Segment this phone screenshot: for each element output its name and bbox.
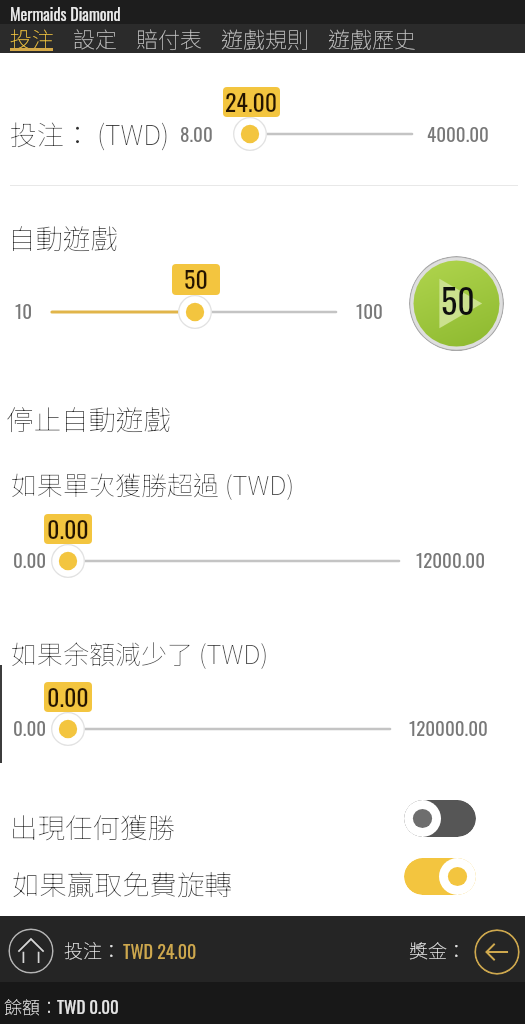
staticText: 餘額： [4,993,58,1019]
staticText: 賠付表 [136,22,203,51]
button[interactable]: 遊戲規則 [221,24,310,53]
staticText: 4000.00 [427,119,489,147]
staticText: 50 [184,264,208,291]
staticText: 100 [356,296,383,324]
button[interactable]: 賠付表 [136,24,203,53]
staticText: 投注 [10,22,55,51]
staticText: 如果余額減少了 (TWD) [11,634,269,672]
staticText: 獎金： [409,936,467,964]
staticText: 遊戲歷史 [328,22,417,51]
staticText: Mermaids Diamond [10,2,121,26]
button[interactable]: 遊戲歷史 [328,24,417,53]
staticText: 停止自動遊戲 [6,398,171,438]
staticText: 投注： [64,936,122,964]
button[interactable]: 投注 [10,24,55,53]
staticText: 120000.00 [409,713,488,741]
staticText: 8.00 [180,119,213,147]
button[interactable]: 出現任何獲勝 [0,795,525,851]
staticText: TWD 0.00 [57,994,119,1019]
staticText: 如果贏取免費旋轉 [12,863,232,903]
staticText: 0.00 [13,545,47,573]
button[interactable]: 如果贏取免費旋轉 [0,853,525,909]
button[interactable]: Free spins toggle [404,858,476,895]
staticText: 24.00 [225,87,278,113]
staticText: 設定 [73,22,118,51]
button[interactable]: Back [474,929,520,975]
staticText: 自動遊戲 [8,217,118,257]
staticText: 投注： (TWD) [10,114,170,153]
staticText: 50 [441,274,475,324]
staticText: 0.00 [47,682,89,708]
staticText: 0.00 [13,713,47,741]
staticText: 10 [15,296,33,324]
button[interactable]: Start auto play [409,256,504,351]
button[interactable]: 設定 [73,24,118,53]
staticText: TWD 24.00 [123,938,197,965]
staticText: 如果單次獲勝超過 (TWD) [11,465,295,503]
staticText: 0.00 [47,514,89,540]
button[interactable]: Home [8,928,54,974]
staticText: 12000.00 [416,545,485,573]
staticText: 出現任何獲勝 [10,806,175,846]
staticText: 遊戲規則 [221,22,310,51]
button[interactable]: Any win toggle [404,800,476,837]
